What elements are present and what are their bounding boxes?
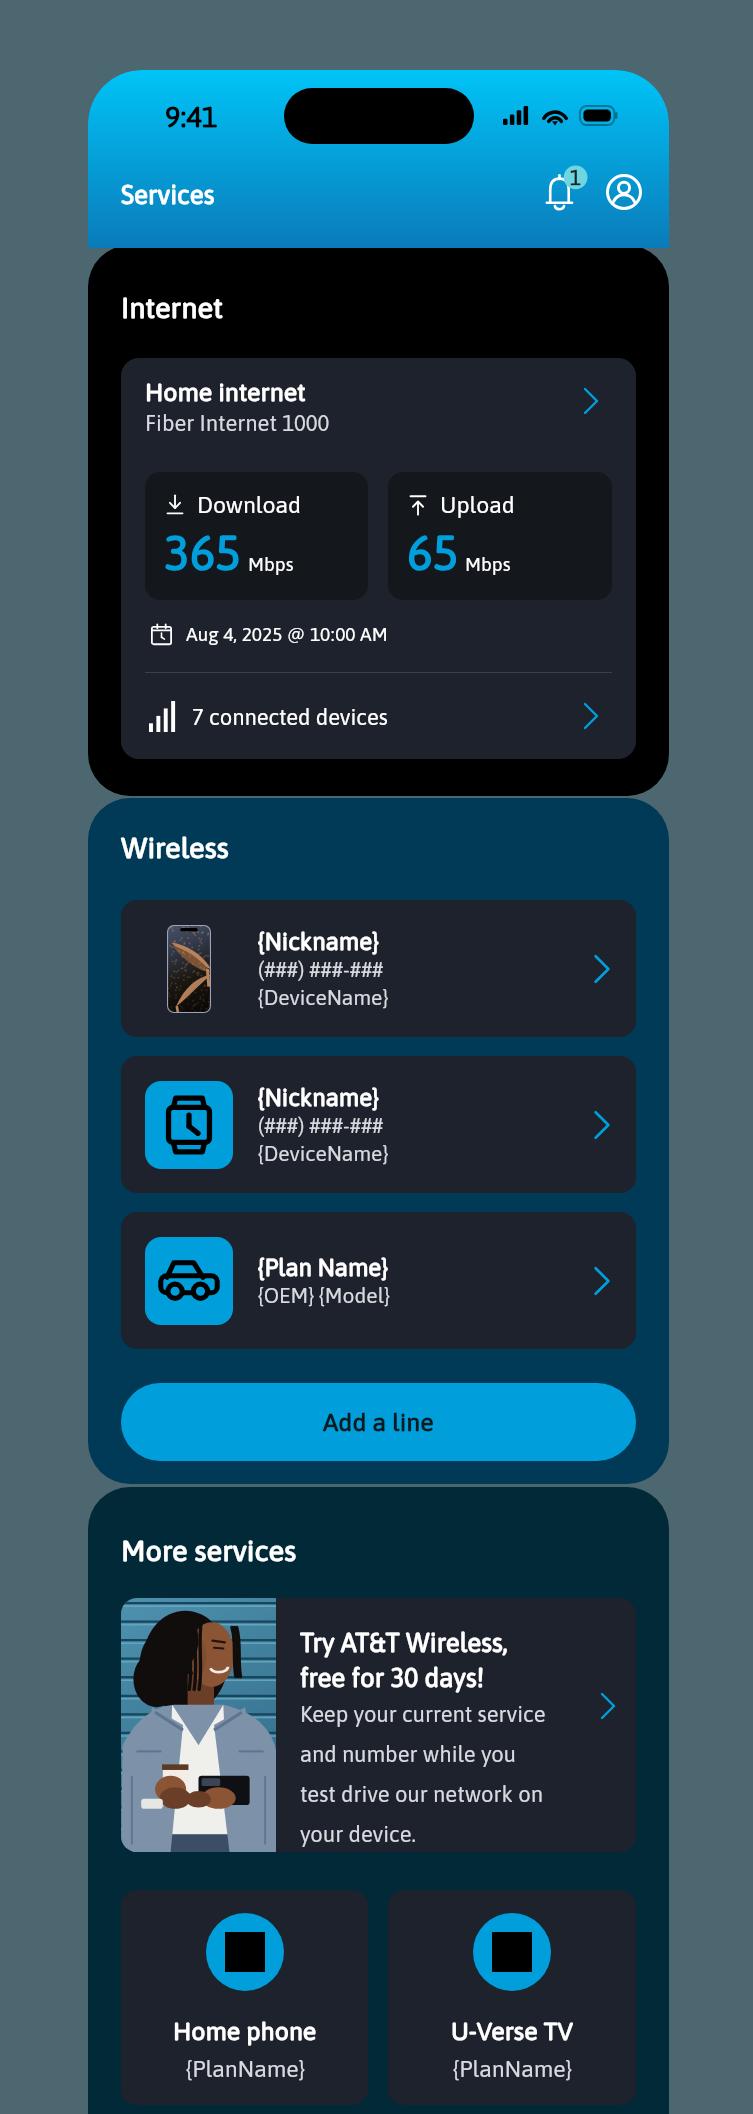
staticText: Services: [121, 180, 215, 210]
staticText: {OEM} {Model}: [258, 1283, 390, 1307]
staticText: Upload: [440, 492, 515, 518]
staticText: Wireless: [121, 831, 229, 864]
staticText: Home phone: [173, 2017, 317, 2046]
staticText: 9:41: [165, 100, 218, 133]
button[interactable]: 7 connected devices: [145, 673, 612, 759]
staticText: {PlanName}: [453, 2056, 572, 2082]
staticText: Mbps: [248, 553, 294, 575]
staticText: {Nickname}: [258, 1084, 379, 1112]
staticText: Home internet: [145, 378, 306, 407]
staticText: (###) ###-###: [258, 1113, 384, 1137]
button[interactable]: Notifications: [535, 163, 591, 219]
staticText: {DeviceName}: [258, 985, 389, 1009]
staticText: Add a line: [323, 1408, 434, 1437]
staticText: Mbps: [465, 553, 511, 575]
staticText: (###) ###-###: [258, 957, 384, 981]
button[interactable]: Home internet: [145, 378, 612, 435]
staticText: Internet: [121, 291, 223, 324]
staticText: More services: [121, 1534, 297, 1567]
button[interactable]: U-Verse TV: [388, 1890, 636, 2105]
button[interactable]: Home phone: [121, 1890, 368, 2105]
button[interactable]: Add a line: [121, 1383, 636, 1461]
staticText: Keep your current service and number whi…: [300, 1701, 546, 1846]
staticText: {DeviceName}: [258, 1141, 389, 1165]
staticText: Aug 4, 2025 @ 10:00 AM: [186, 623, 388, 645]
staticText: {PlanName}: [186, 2056, 305, 2082]
staticText: U-Verse TV: [451, 2017, 573, 2046]
staticText: 7 connected devices: [192, 704, 388, 729]
button[interactable]: {Plan Name}: [121, 1212, 636, 1349]
staticText: {Plan Name}: [258, 1254, 388, 1282]
staticText: Try AT&T Wireless, free for 30 days!: [300, 1628, 508, 1692]
staticText: 1: [570, 166, 581, 189]
button[interactable]: {Nickname}: [121, 900, 636, 1037]
staticText: Download: [197, 492, 302, 518]
button[interactable]: {Nickname}: [121, 1056, 636, 1193]
staticText: 65: [407, 525, 459, 580]
staticText: {Nickname}: [258, 928, 379, 956]
button[interactable]: Try AT&T Wireless, free for 30 days!: [121, 1598, 636, 1852]
button[interactable]: Account: [600, 168, 648, 216]
staticText: 365: [164, 525, 242, 580]
staticText: Fiber Internet 1000: [145, 410, 330, 435]
